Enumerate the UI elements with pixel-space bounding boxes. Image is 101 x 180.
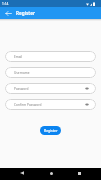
staticText: Register <box>44 128 58 133</box>
staticText: 1:14 <box>2 2 9 6</box>
button[interactable]: Recent apps <box>72 167 86 179</box>
button[interactable]: Back <box>0 7 16 19</box>
button[interactable]: Username <box>5 67 96 78</box>
staticText: Email <box>14 55 23 59</box>
staticText: Register <box>16 10 36 16</box>
button[interactable]: Toggle password visibility <box>83 85 90 92</box>
button[interactable]: Email <box>5 51 96 62</box>
button[interactable]: Password <box>5 83 96 94</box>
button[interactable]: Back <box>15 167 29 179</box>
button[interactable]: Confirm Password <box>5 99 96 110</box>
button[interactable]: Toggle password visibility <box>83 101 90 108</box>
button[interactable]: Register <box>40 126 61 135</box>
staticText: Confirm Password <box>14 103 42 107</box>
staticText: Username <box>14 71 30 75</box>
button[interactable]: Home <box>44 167 58 179</box>
staticText: Password <box>14 87 29 91</box>
